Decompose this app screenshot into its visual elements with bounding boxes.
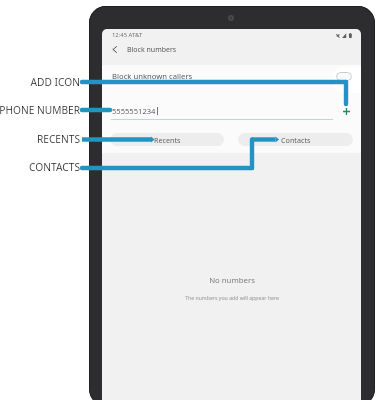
staticText: The numbers you add will appear here: [185, 294, 279, 301]
button[interactable]: Recents: [110, 133, 224, 146]
button[interactable]: Add number: [339, 104, 353, 118]
staticText: CONTACTS: [0, 160, 80, 174]
staticText: No numbers: [209, 275, 255, 286]
staticText: 12:45 AT&T: [112, 31, 143, 39]
button[interactable]: Block unknown callers: [102, 65, 361, 87]
staticText: Block numbers: [127, 45, 177, 55]
staticText: Recents: [154, 135, 181, 145]
staticText: PHONE NUMBER: [0, 103, 80, 117]
staticText: Contacts: [281, 135, 311, 145]
button[interactable]: Contacts: [238, 133, 353, 146]
staticText: RECENTS: [0, 132, 80, 146]
staticText: Block unknown callers: [112, 71, 193, 81]
staticText: ADD ICON: [0, 75, 80, 89]
button[interactable]: Back: [106, 41, 123, 58]
staticText: 5555551234: [112, 106, 156, 116]
